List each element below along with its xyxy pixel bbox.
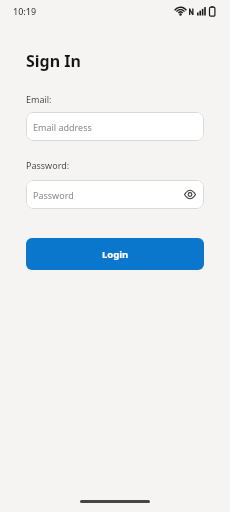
button[interactable]: Email address [26,112,204,141]
button[interactable]: Login [26,238,204,270]
staticText: Sign In [26,50,81,72]
staticText: Password [33,189,74,201]
staticText: Login [102,248,129,261]
staticText: Email address [33,121,92,133]
staticText: 10:19 [13,5,37,17]
staticText: Email: [26,93,52,105]
staticText: Password: [26,159,70,171]
button[interactable]: Password [26,180,204,209]
